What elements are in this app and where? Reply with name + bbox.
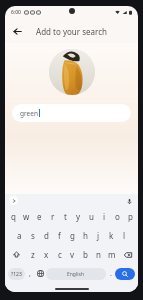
staticText: z (31, 249, 35, 260)
button[interactable]: z (26, 245, 40, 264)
button[interactable]: g (66, 226, 79, 245)
button[interactable]: v (66, 245, 79, 264)
button[interactable]: w (20, 207, 33, 226)
button[interactable]: q (6, 207, 20, 226)
button[interactable]: o (111, 207, 124, 226)
button[interactable]: y (72, 207, 85, 226)
staticText: q (11, 211, 16, 222)
staticText: x (44, 249, 49, 260)
button[interactable]: Backspace (118, 245, 137, 264)
button[interactable]: More suggestions (9, 196, 18, 205)
staticText: y (76, 211, 81, 222)
button[interactable]: h (79, 226, 92, 245)
staticText: r (51, 211, 55, 222)
button[interactable]: ?123 (8, 268, 25, 280)
staticText: c (58, 249, 62, 260)
button[interactable]: Back (8, 22, 26, 40)
staticText: o (115, 211, 120, 222)
button[interactable]: u (85, 207, 98, 226)
button[interactable]: r (46, 207, 59, 226)
staticText: English (67, 271, 85, 278)
button[interactable]: Period (106, 264, 115, 283)
staticText: w (23, 211, 30, 222)
staticText: h (83, 230, 88, 241)
staticText: , (29, 269, 31, 279)
button[interactable]: f (53, 226, 66, 245)
staticText: i (103, 211, 106, 222)
button[interactable]: l (118, 226, 131, 245)
staticText: v (70, 249, 75, 260)
staticText: green (20, 109, 38, 118)
staticText: t (64, 211, 67, 222)
button[interactable]: Search (115, 268, 135, 280)
staticText: d (44, 230, 49, 241)
button[interactable]: n (92, 245, 105, 264)
staticText: n (96, 249, 101, 260)
button[interactable]: t (59, 207, 72, 226)
staticText: f (58, 230, 61, 241)
button[interactable]: d (40, 226, 53, 245)
staticText: p (128, 211, 133, 222)
staticText: b (83, 249, 88, 260)
button[interactable]: a (12, 226, 26, 245)
staticText: a (17, 230, 22, 241)
button[interactable]: p (124, 207, 137, 226)
staticText: j (97, 230, 100, 241)
staticText: ?123 (11, 271, 22, 278)
button[interactable]: s (26, 226, 40, 245)
button[interactable]: Voice input (124, 196, 134, 206)
button[interactable]: j (92, 226, 105, 245)
button[interactable]: m (105, 245, 118, 264)
staticText: Add to your search (36, 26, 107, 37)
staticText: e (37, 211, 42, 222)
staticText: . (110, 269, 112, 279)
button[interactable]: Shift (6, 245, 26, 264)
button[interactable]: x (40, 245, 53, 264)
button[interactable]: b (79, 245, 92, 264)
button[interactable]: Switch language (35, 264, 46, 283)
button[interactable]: i (98, 207, 111, 226)
button[interactable]: c (53, 245, 66, 264)
staticText: l (123, 230, 126, 241)
button[interactable]: e (33, 207, 46, 226)
button[interactable]: Selected image (49, 49, 95, 95)
staticText: u (89, 211, 94, 222)
button[interactable]: k (105, 226, 118, 245)
staticText: s (31, 230, 35, 241)
staticText: k (109, 230, 114, 241)
staticText: m (108, 249, 116, 260)
staticText: g (70, 230, 75, 241)
staticText: 6:00 (11, 9, 21, 16)
button[interactable]: Comma (25, 264, 35, 283)
button[interactable]: green (12, 104, 131, 122)
button[interactable]: English (46, 268, 106, 280)
